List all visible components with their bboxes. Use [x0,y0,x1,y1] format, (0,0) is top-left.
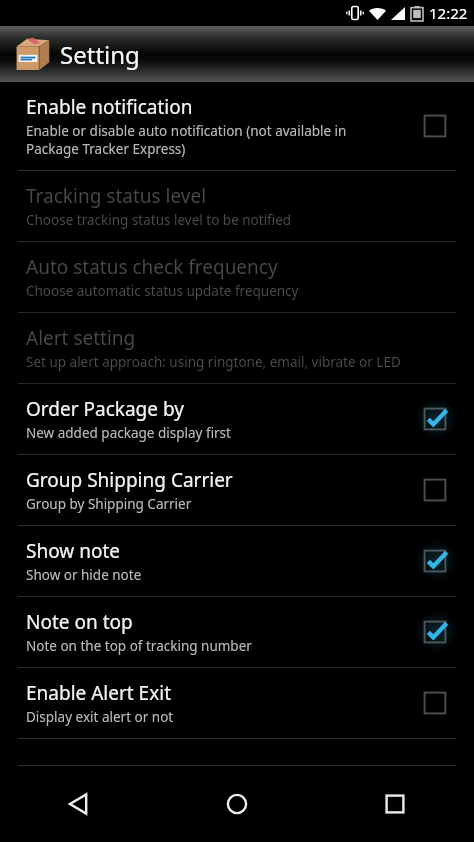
button[interactable]: Unchecked [414,105,456,147]
button[interactable]: Alert setting [0,313,474,383]
staticText: Choose tracking status level to be notif… [26,211,292,229]
staticText: Auto status check frequency [26,254,278,280]
staticText: Enable notification [26,94,193,120]
staticText: Set up alert approach: using ringtone, e… [26,353,401,371]
button[interactable]: Checked [414,398,456,440]
staticText: 12:22 [429,3,468,23]
button[interactable]: Home [158,766,316,842]
staticText: Note on top [26,609,133,635]
staticText: Enable Alert Exit [26,680,171,706]
button[interactable]: Checked [414,611,456,653]
staticText: Setting [60,38,140,71]
staticText: Tracking status level [26,183,207,209]
button[interactable]: Unchecked [414,682,456,724]
staticText: New added package display first [26,424,231,442]
staticText: Note on the top of tracking number [26,637,252,655]
staticText: Alert setting [26,325,136,351]
staticText: Choose automatic status update frequency [26,282,299,300]
staticText: Show or hide note [26,566,142,584]
button[interactable]: Note on top [0,597,474,667]
button[interactable]: Back [0,766,158,842]
button[interactable]: Checked [414,540,456,582]
button[interactable]: Enable notification [0,82,474,170]
button[interactable]: Group Shipping Carrier [0,455,474,525]
staticText: Group Shipping Carrier [26,467,233,493]
button[interactable]: Unchecked [414,469,456,511]
button[interactable]: Auto status check frequency [0,242,474,312]
button[interactable]: Show note [0,526,474,596]
staticText: Order Package by [26,396,184,422]
button[interactable]: Tracking status level [0,171,474,241]
staticText: Enable or disable auto notification (not… [26,122,402,158]
staticText: Group by Shipping Carrier [26,495,192,513]
button[interactable]: Order Package by [0,384,474,454]
button[interactable]: Enable Alert Exit [0,668,474,738]
button[interactable]: Recent apps [316,766,474,842]
staticText: Display exit alert or not [26,708,174,726]
staticText: Show note [26,538,120,564]
